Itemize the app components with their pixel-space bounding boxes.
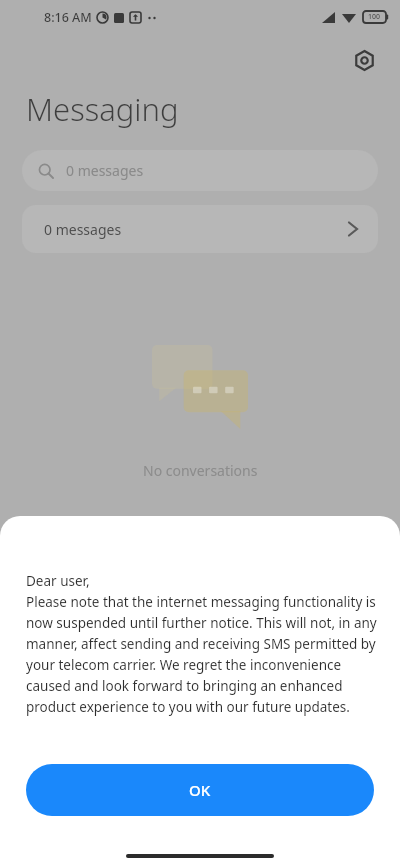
staticText: 0 messages [66, 161, 144, 180]
button[interactable]: OK [26, 764, 374, 816]
staticText: OK [189, 780, 211, 800]
staticText: 8:16 AM [44, 9, 92, 26]
staticText: Dear user, Please note that the internet… [26, 572, 380, 716]
staticText: Messaging [26, 88, 179, 130]
button[interactable]: 0 messages [22, 205, 378, 253]
button[interactable]: 0 messages [22, 150, 378, 191]
button[interactable]: Settings [344, 40, 384, 80]
staticText: 0 messages [44, 220, 122, 239]
staticText: No conversations [143, 461, 258, 480]
staticText: 100 [368, 12, 381, 22]
